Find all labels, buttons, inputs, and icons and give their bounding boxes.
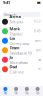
staticText: Mon bbox=[35, 39, 41, 42]
button[interactable]: Tab bbox=[11, 87, 22, 95]
button[interactable]: Jo bbox=[0, 55, 43, 64]
staticText: Team bbox=[9, 45, 19, 50]
button[interactable]: Team bbox=[0, 45, 43, 55]
staticText: Tab bbox=[25, 91, 29, 95]
staticText: 9:41 bbox=[3, 0, 10, 5]
staticText: 9:12 bbox=[34, 20, 41, 23]
staticText: Anna bbox=[9, 14, 20, 19]
staticText: On my way bbox=[9, 41, 29, 46]
button[interactable]: Tab bbox=[21, 87, 32, 95]
staticText: 8:45 bbox=[34, 29, 41, 33]
staticText: Tab bbox=[3, 91, 7, 95]
staticText: Standup at 10 bbox=[9, 50, 31, 55]
staticText: Lia bbox=[9, 35, 14, 41]
staticText: Search bbox=[4, 12, 16, 17]
staticText: Fri bbox=[38, 67, 41, 71]
staticText: Sun bbox=[36, 48, 41, 52]
staticText: Call me bbox=[9, 69, 23, 74]
staticText: Tab bbox=[14, 91, 18, 95]
button[interactable]: Mark bbox=[0, 26, 43, 36]
button[interactable]: Tab bbox=[32, 87, 43, 95]
button[interactable]: Tab bbox=[0, 87, 11, 95]
staticText: Thanks! bbox=[9, 31, 22, 36]
staticText: Tab bbox=[36, 91, 40, 95]
staticText: Sat bbox=[38, 58, 41, 61]
button[interactable]: Lia bbox=[0, 36, 43, 45]
button[interactable]: Dad bbox=[0, 64, 43, 74]
staticText: Dad bbox=[9, 64, 17, 69]
staticText: Jo bbox=[9, 54, 12, 60]
button[interactable]: Anna bbox=[0, 17, 43, 26]
staticText: Nice photo bbox=[9, 60, 27, 65]
staticText: See you soon bbox=[9, 19, 22, 30]
staticText: Mark bbox=[9, 26, 19, 31]
staticText: ▮▮▮ bbox=[37, 1, 40, 4]
